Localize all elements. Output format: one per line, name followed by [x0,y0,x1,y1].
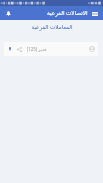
button[interactable]: (125) مدير [4,42,98,56]
staticText: المعاملات الفرعية [31,23,73,31]
staticText: (125) مدير [27,46,47,52]
staticText: الاتصالات الفرعية [47,9,88,17]
button[interactable]: Notifications [2,7,14,19]
button[interactable]: Menu [89,8,100,19]
